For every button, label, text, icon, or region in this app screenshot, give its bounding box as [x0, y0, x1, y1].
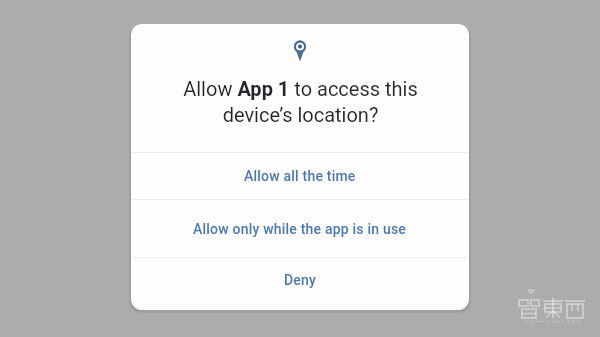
staticText: Deny [284, 272, 317, 288]
button[interactable]: Allow all the time [131, 153, 469, 199]
button[interactable]: Allow only while the app is in use [131, 200, 469, 257]
staticText: Allow only while the app is in use [193, 221, 407, 237]
staticText: Allow all the time [244, 168, 356, 184]
staticText: Allow App 1 to access this device’s loca… [183, 77, 418, 126]
button[interactable]: Deny [131, 258, 469, 310]
